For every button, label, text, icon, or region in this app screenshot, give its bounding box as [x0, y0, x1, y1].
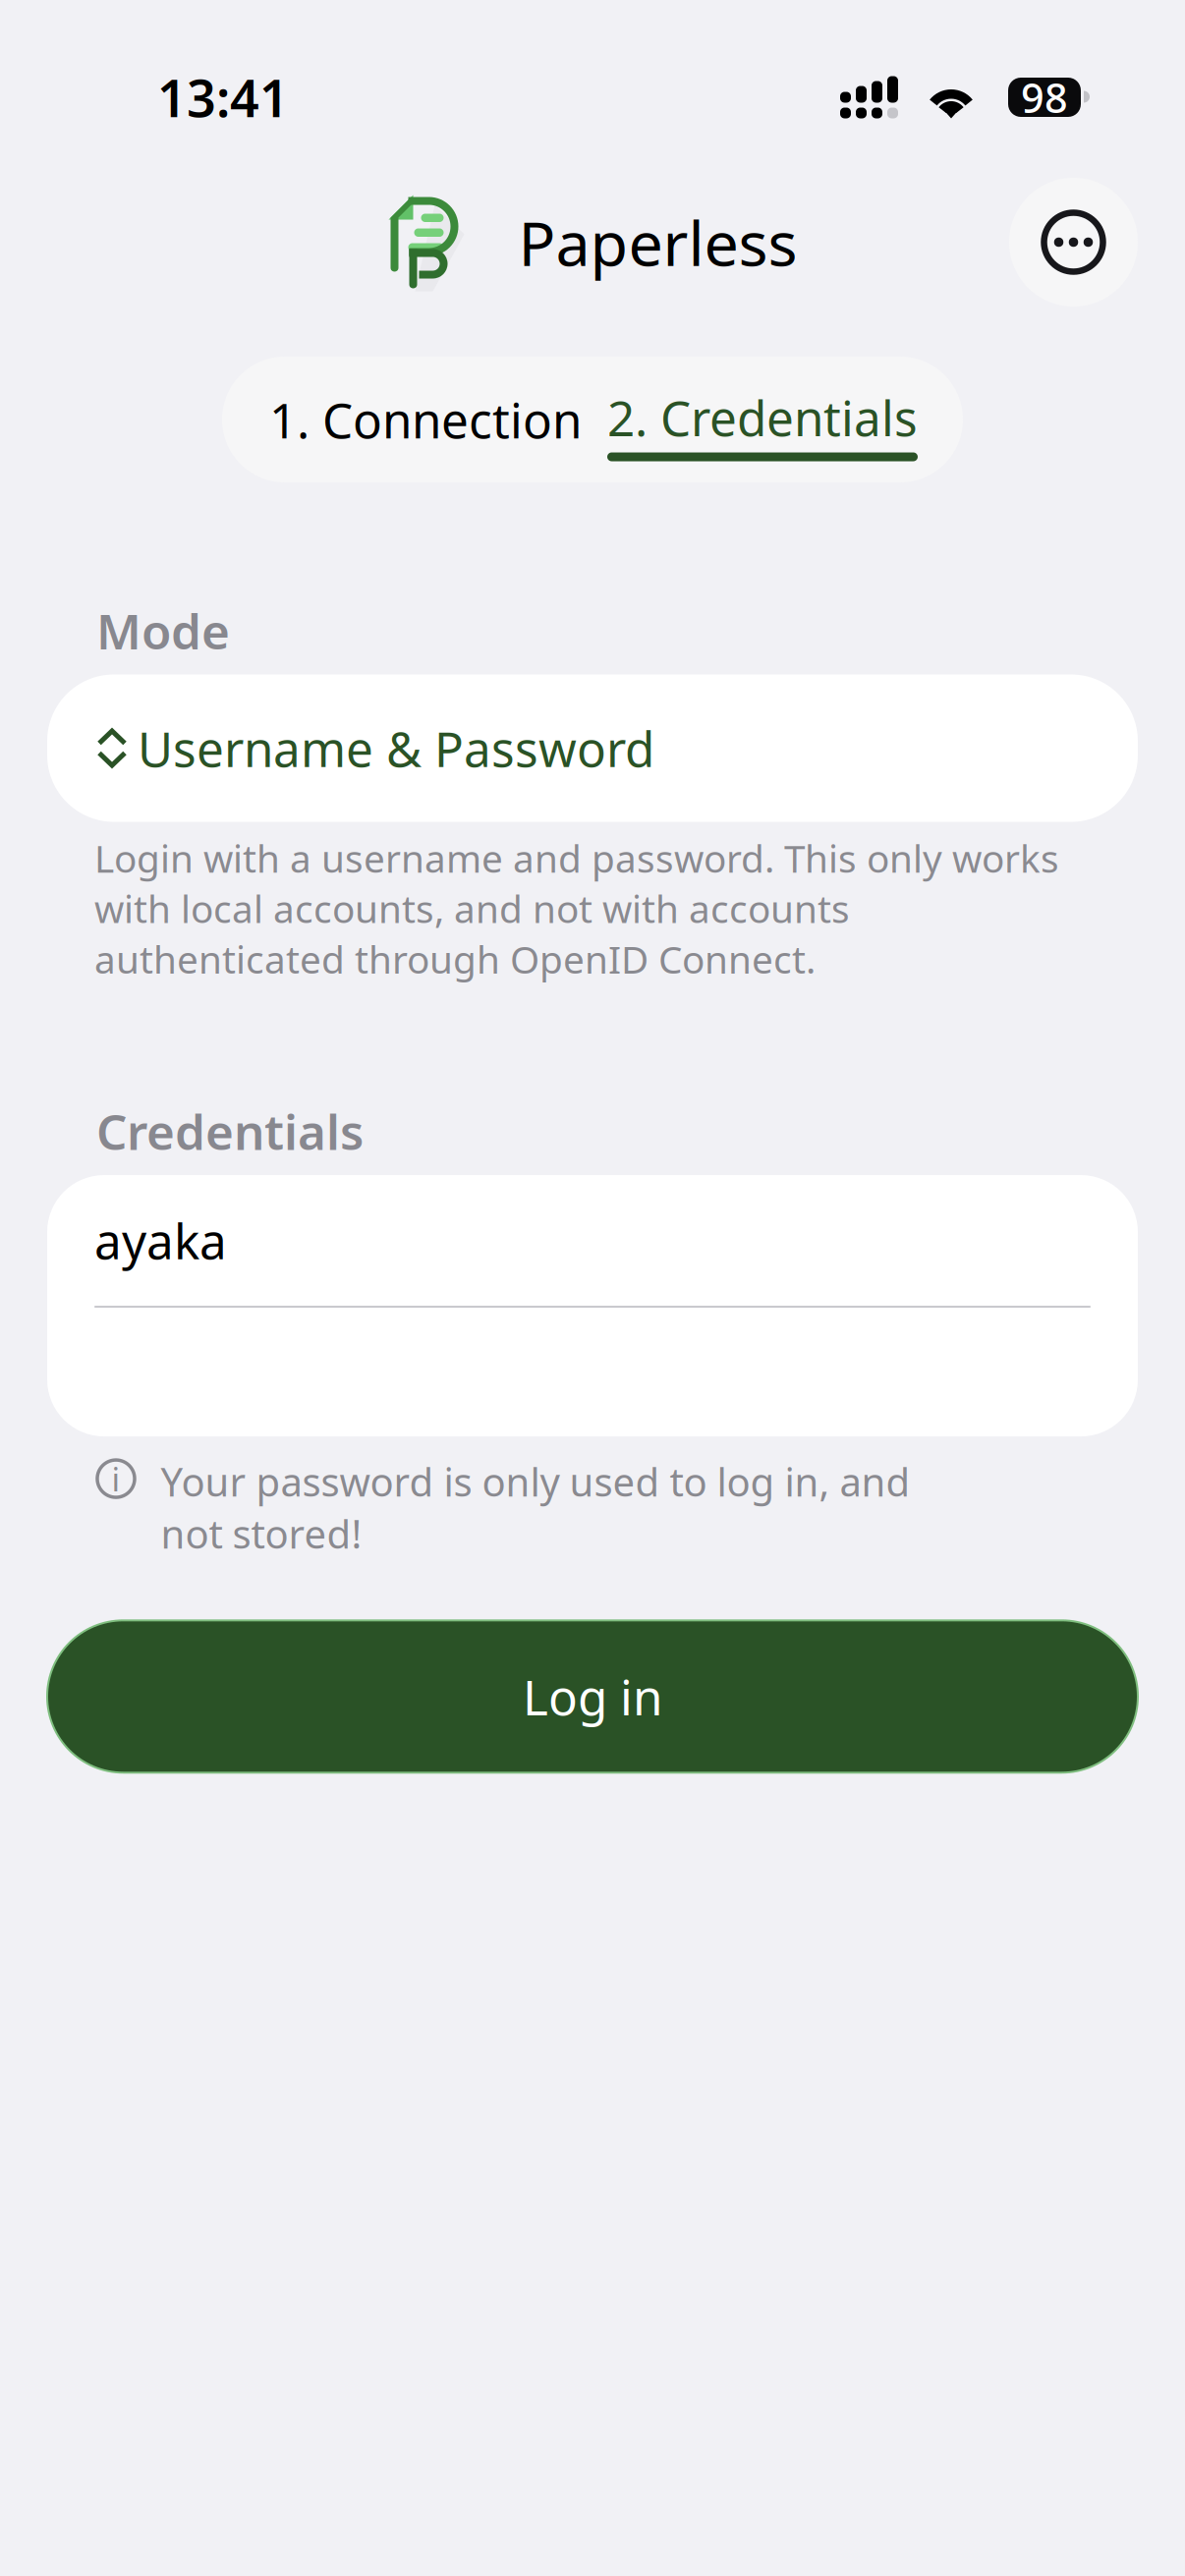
button[interactable]: Username & Password	[47, 674, 1138, 822]
staticText: Username & Password	[138, 716, 654, 780]
staticText: ayaka	[94, 1208, 227, 1273]
button[interactable]: Log in	[47, 1620, 1138, 1773]
staticText: Log in	[523, 1664, 662, 1729]
staticText: 13:41	[157, 63, 289, 131]
staticText: Credentials	[96, 1099, 364, 1163]
button[interactable]: 1. Connection	[269, 357, 582, 482]
button[interactable]: More options	[1009, 178, 1138, 307]
staticText: Login with a username and password. This…	[94, 833, 1059, 984]
staticText: 2. Credentials	[607, 385, 918, 449]
staticText: Mode	[96, 598, 230, 663]
staticText: 1. Connection	[269, 387, 582, 452]
button[interactable]: 2. Credentials	[607, 357, 918, 482]
staticText: Paperless	[518, 201, 797, 283]
staticText: 98	[1021, 70, 1068, 124]
staticText: i	[112, 1457, 120, 1500]
staticText: Your password is only used to log in, an…	[161, 1455, 910, 1559]
